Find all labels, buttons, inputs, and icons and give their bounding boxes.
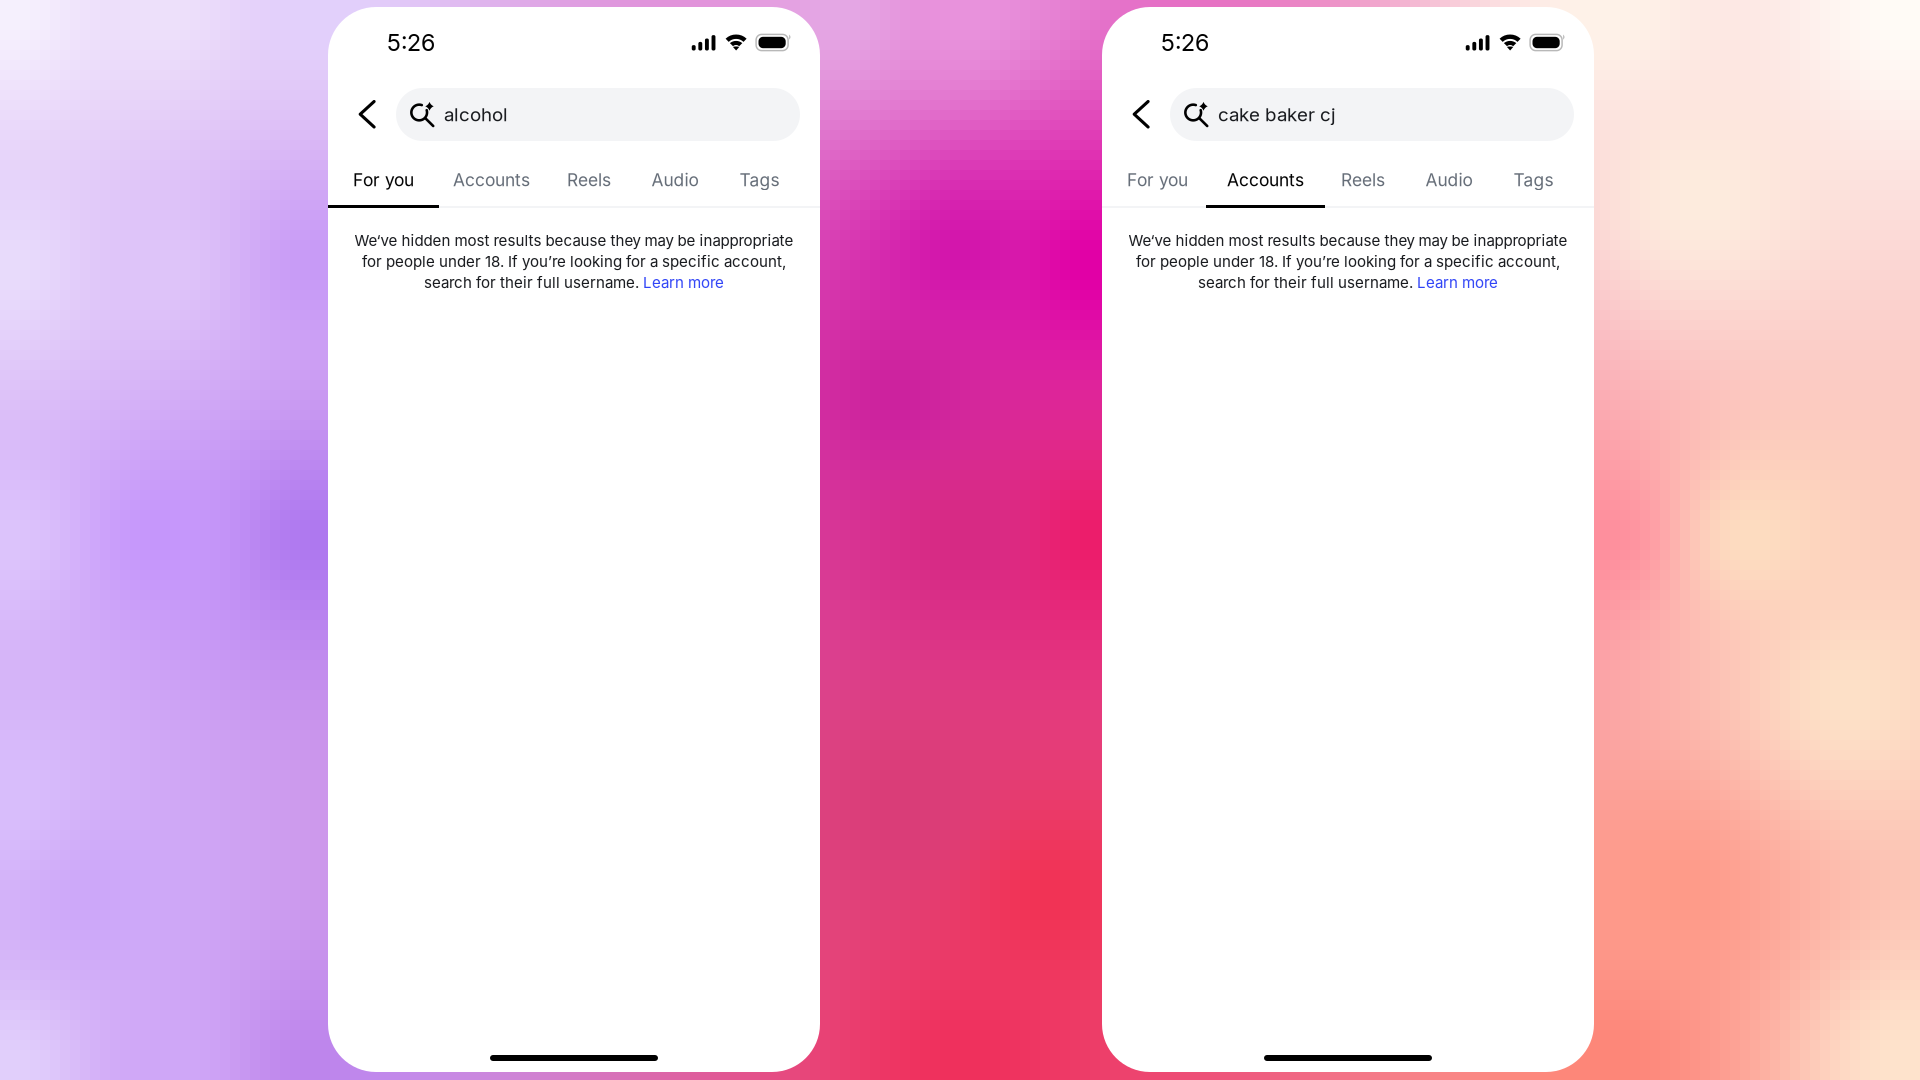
staticText: Reels: [1341, 169, 1385, 190]
staticText: For you: [353, 169, 414, 190]
staticText: Accounts: [453, 169, 530, 190]
staticText: Tags: [739, 169, 779, 190]
staticText: alcohol: [444, 103, 508, 126]
button[interactable]: Tags: [1496, 155, 1571, 205]
button[interactable]: For you: [1108, 155, 1207, 205]
button[interactable]: Back: [350, 88, 384, 141]
button[interactable]: cake baker cj: [1170, 88, 1574, 141]
staticText: cake baker cj: [1218, 103, 1336, 126]
button[interactable]: Audio: [633, 155, 717, 205]
button[interactable]: alcohol: [396, 88, 800, 141]
button[interactable]: Audio: [1407, 155, 1491, 205]
staticText: For you: [1127, 169, 1188, 190]
button[interactable]: Reels: [548, 155, 630, 205]
staticText: 5:26: [387, 28, 435, 57]
button[interactable]: Accounts: [1208, 155, 1323, 205]
button[interactable]: Back: [1124, 88, 1158, 141]
staticText: Audio: [651, 169, 698, 190]
button[interactable]: Reels: [1322, 155, 1404, 205]
button[interactable]: Tags: [722, 155, 797, 205]
staticText: Accounts: [1227, 169, 1304, 190]
staticText: Audio: [1425, 169, 1472, 190]
staticText: 5:26: [1161, 28, 1209, 57]
staticText: Learn more: [1417, 273, 1498, 292]
staticText: We‘ve hidden most results because they m…: [354, 231, 793, 250]
staticText: search for their full username.: [424, 273, 643, 292]
staticText: for people under 18. If you’re looking f…: [362, 252, 786, 271]
staticText: Reels: [567, 169, 611, 190]
button[interactable]: For you: [334, 155, 433, 205]
staticText: We‘ve hidden most results because they m…: [1128, 231, 1567, 250]
button[interactable]: Learn more: [643, 273, 724, 292]
staticText: for people under 18. If you’re looking f…: [1136, 252, 1560, 271]
staticText: Learn more: [643, 273, 724, 292]
staticText: Tags: [1513, 169, 1553, 190]
staticText: search for their full username.: [1198, 273, 1417, 292]
button[interactable]: Accounts: [434, 155, 549, 205]
button[interactable]: Learn more: [1417, 273, 1498, 292]
